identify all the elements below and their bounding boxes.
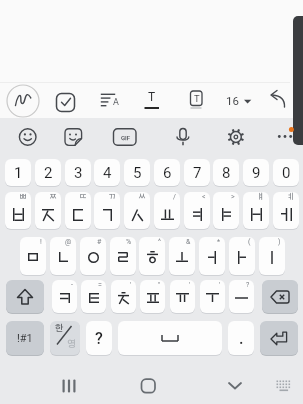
staticText: ㅉ <box>49 193 57 201</box>
button[interactable]: 4 <box>94 159 120 186</box>
button[interactable] <box>127 368 169 404</box>
button[interactable] <box>89 83 125 117</box>
button[interactable] <box>262 280 298 313</box>
staticText: !#1 <box>17 332 33 345</box>
button[interactable] <box>173 83 209 117</box>
staticText: " <box>158 281 161 289</box>
button[interactable] <box>216 83 252 117</box>
button[interactable] <box>10 120 46 152</box>
staticText: ㄲ <box>108 193 116 201</box>
button[interactable] <box>260 321 298 355</box>
staticText: ? <box>95 329 103 348</box>
button[interactable] <box>107 120 143 152</box>
staticText: 6 <box>163 164 172 182</box>
staticText: 영 <box>67 340 76 349</box>
button[interactable] <box>258 83 294 117</box>
staticText: ) <box>278 238 281 246</box>
button[interactable]: ㅃ <box>5 192 31 229</box>
button[interactable]: ㅆ <box>124 192 150 229</box>
button[interactable]: & <box>169 237 195 275</box>
button[interactable]: ㄲ <box>94 192 120 229</box>
button[interactable]: ㅉ <box>35 192 61 229</box>
button[interactable]: ( <box>229 237 255 275</box>
staticText: 2 <box>44 164 53 182</box>
staticText: 16 <box>226 94 239 107</box>
staticText: GIF <box>121 134 131 141</box>
button[interactable]: * <box>199 237 225 275</box>
button[interactable]: 0 <box>273 159 299 186</box>
staticText: ㄸ <box>79 193 87 201</box>
staticText: 한 <box>55 324 64 333</box>
staticText: / <box>173 193 176 201</box>
button[interactable] <box>6 280 44 313</box>
button[interactable]: 한 <box>50 321 80 355</box>
button[interactable] <box>218 120 254 152</box>
staticText: A <box>113 97 119 108</box>
button[interactable] <box>262 120 298 152</box>
button[interactable]: 8 <box>213 159 239 186</box>
staticText: 5 <box>133 164 142 182</box>
button[interactable]: = <box>81 280 106 313</box>
button[interactable]: / <box>154 192 180 229</box>
button[interactable] <box>131 83 167 117</box>
button[interactable] <box>118 321 222 355</box>
button[interactable]: 9 <box>243 159 269 186</box>
staticText: 0 <box>282 164 291 182</box>
staticText: * <box>217 238 221 246</box>
staticText: < <box>202 193 206 201</box>
button[interactable]: . <box>228 321 254 355</box>
button[interactable]: 6 <box>154 159 180 186</box>
button[interactable]: # <box>80 237 106 275</box>
button[interactable]: ^ <box>139 237 165 275</box>
button[interactable]: !#1 <box>6 321 44 355</box>
staticText: ' <box>130 281 132 289</box>
button[interactable]: ? <box>86 321 112 355</box>
button[interactable]: " <box>140 280 165 313</box>
button[interactable]: ㅒ <box>243 192 269 229</box>
button[interactable] <box>214 368 256 404</box>
button[interactable] <box>262 368 298 404</box>
staticText: 1 <box>14 164 23 182</box>
button[interactable]: ? <box>229 280 254 313</box>
staticText: 9 <box>252 164 261 182</box>
staticText: % <box>126 238 132 246</box>
button[interactable]: 5 <box>124 159 150 186</box>
button[interactable]: - <box>52 280 77 313</box>
button[interactable]: @ <box>50 237 76 275</box>
staticText: ' <box>219 281 221 289</box>
button[interactable]: < <box>184 192 210 229</box>
staticText: - <box>71 281 73 289</box>
staticText: ㅖ <box>287 193 295 201</box>
button[interactable]: > <box>213 192 239 229</box>
button[interactable]: ' <box>170 280 195 313</box>
button[interactable]: 3 <box>65 159 91 186</box>
staticText: ! <box>40 238 42 246</box>
staticText: & <box>186 238 191 246</box>
button[interactable]: ' <box>111 280 136 313</box>
staticText: 8 <box>222 164 231 182</box>
button[interactable]: % <box>110 237 136 275</box>
button[interactable] <box>5 83 41 117</box>
button[interactable]: ㄸ <box>65 192 91 229</box>
button[interactable]: 2 <box>35 159 61 186</box>
button[interactable]: ! <box>20 237 46 275</box>
button[interactable] <box>47 83 83 117</box>
button[interactable] <box>48 368 90 404</box>
button[interactable]: ㅖ <box>273 192 299 229</box>
staticText: T <box>148 90 156 104</box>
button[interactable]: 1 <box>5 159 31 186</box>
staticText: 3 <box>74 164 83 182</box>
staticText: ( <box>248 238 251 246</box>
button[interactable]: ) <box>259 237 285 275</box>
staticText: @ <box>65 238 72 246</box>
staticText: ^ <box>158 238 161 246</box>
staticText: = <box>98 281 102 289</box>
button[interactable] <box>165 120 201 152</box>
button[interactable] <box>55 120 91 152</box>
staticText: ㅆ <box>138 193 146 201</box>
button[interactable]: ' <box>200 280 225 313</box>
staticText: ㅃ <box>19 193 27 201</box>
staticText: ' <box>189 281 191 289</box>
staticText: > <box>231 193 235 201</box>
button[interactable]: 7 <box>184 159 210 186</box>
